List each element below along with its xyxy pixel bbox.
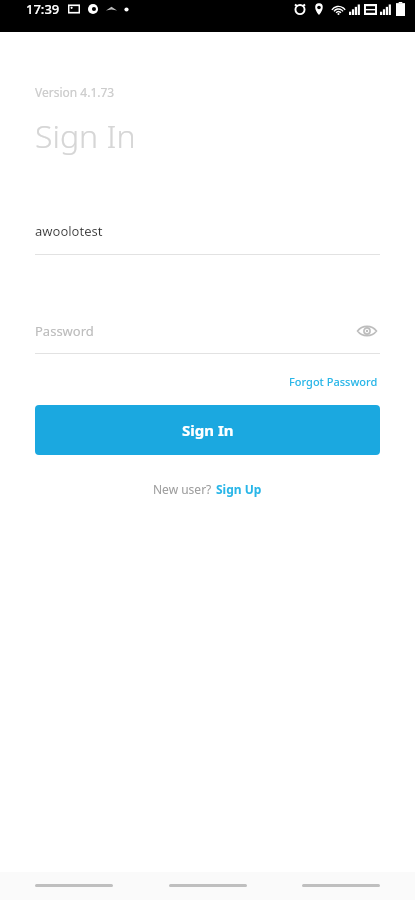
button[interactable]: Password [35,316,380,346]
staticText: Version 4.1.73 [35,84,115,100]
staticText: Password [35,322,94,340]
staticText: New user? [153,481,215,497]
staticText: Sign In [35,114,136,158]
button[interactable]: Back [281,872,401,898]
button[interactable]: Recents [14,872,134,898]
staticText: Sign In [182,420,234,440]
staticText: Forgot Password [289,374,378,389]
button[interactable]: Show password [354,318,380,344]
button[interactable]: Sign In [35,405,380,455]
staticText: awoolotest [35,222,103,240]
button[interactable]: Home [148,872,268,898]
button[interactable]: awoolotest [35,216,380,255]
staticText: 17:39 [26,0,60,18]
button[interactable]: Sign Up [215,479,263,499]
button[interactable]: Forgot Password [287,372,380,391]
staticText: Sign Up [216,481,262,497]
